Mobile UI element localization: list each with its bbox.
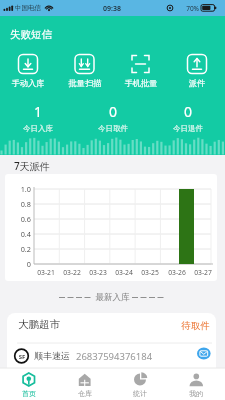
- staticText: 70%: [177, 4, 199, 13]
- staticText: 我的: [176, 389, 216, 398]
- button[interactable]: [115, 52, 167, 90]
- staticText: 0: [11, 259, 31, 269]
- staticText: 03-23: [85, 268, 111, 277]
- button[interactable]: [59, 52, 111, 90]
- staticText: 今日退件: [158, 124, 218, 133]
- staticText: 中国电信: [15, 4, 41, 12]
- staticText: 03-27: [190, 268, 216, 277]
- staticText: 手动入库: [0, 78, 58, 88]
- staticText: 0: [93, 102, 133, 121]
- staticText: SF: [15, 353, 29, 361]
- staticText: 批量扫描: [55, 78, 115, 88]
- staticText: 派件: [167, 78, 225, 88]
- button[interactable]: [113, 368, 169, 400]
- staticText: 今日取件: [83, 124, 143, 133]
- staticText: 最新入库: [82, 292, 143, 303]
- staticText: 0.4: [11, 229, 31, 239]
- staticText: 03-24: [111, 268, 137, 277]
- staticText: 顺丰速运: [34, 350, 70, 361]
- staticText: 仓库: [65, 389, 105, 398]
- staticText: 0.6: [11, 214, 31, 224]
- staticText: 03-26: [164, 268, 190, 277]
- staticText: 0: [168, 102, 208, 121]
- staticText: 0.2: [11, 244, 31, 254]
- staticText: 09:38: [92, 4, 132, 14]
- staticText: 03-22: [59, 268, 85, 277]
- button[interactable]: [2, 52, 54, 90]
- staticText: 首页: [9, 389, 49, 398]
- staticText: 待取件: [170, 320, 210, 332]
- button[interactable]: [0, 368, 56, 400]
- staticText: 26837594376184: [76, 350, 153, 363]
- button[interactable]: [171, 52, 223, 90]
- staticText: 手机批量: [111, 78, 171, 88]
- staticText: 1: [18, 102, 58, 121]
- staticText: 1.0: [11, 184, 31, 194]
- staticText: 大鹏超市: [18, 318, 60, 331]
- button[interactable]: [193, 344, 215, 364]
- button[interactable]: [7, 313, 216, 368]
- staticText: 0.8: [11, 199, 31, 209]
- staticText: 03-21: [33, 268, 59, 277]
- staticText: 统计: [120, 389, 160, 398]
- staticText: 失败短信: [10, 28, 52, 41]
- button[interactable]: [169, 368, 225, 400]
- staticText: 今日入库: [8, 124, 68, 133]
- staticText: 7天派件: [14, 159, 50, 173]
- button[interactable]: [57, 368, 113, 400]
- staticText: 03-25: [137, 268, 163, 277]
